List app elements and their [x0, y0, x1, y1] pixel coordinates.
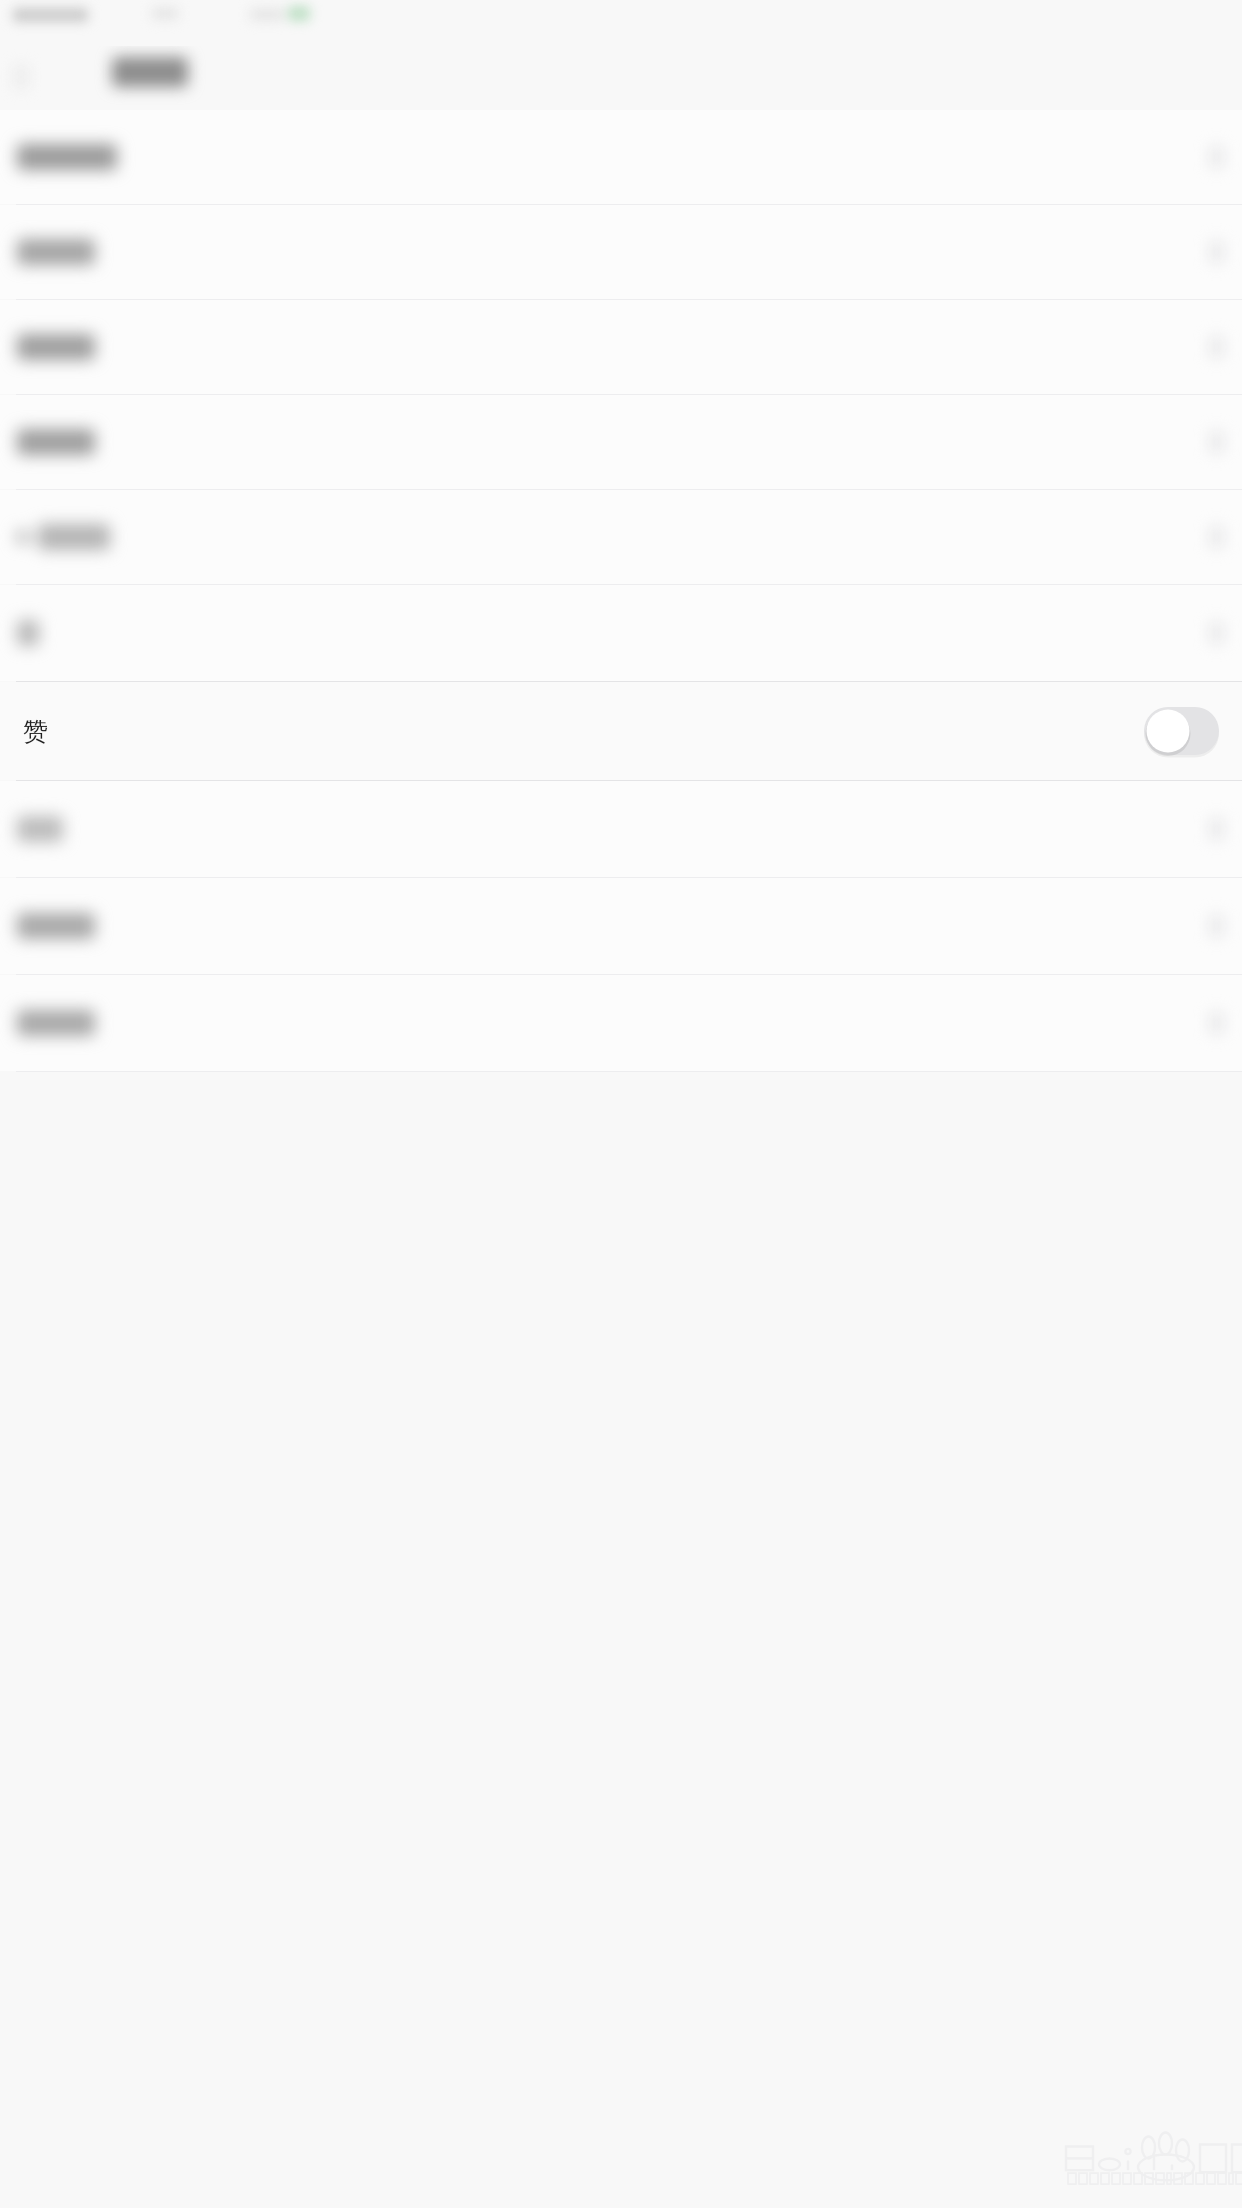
button[interactable]	[0, 110, 1242, 204]
button[interactable]	[0, 490, 1242, 584]
button[interactable]: 赞	[0, 682, 1242, 780]
button[interactable]: 赞 toggle	[1144, 707, 1219, 755]
button[interactable]	[0, 205, 1242, 299]
staticText: 赞	[23, 716, 48, 747]
button[interactable]	[0, 781, 1242, 877]
button[interactable]	[0, 395, 1242, 489]
button[interactable]	[0, 878, 1242, 974]
button[interactable]	[0, 300, 1242, 394]
button[interactable]	[0, 975, 1242, 1071]
